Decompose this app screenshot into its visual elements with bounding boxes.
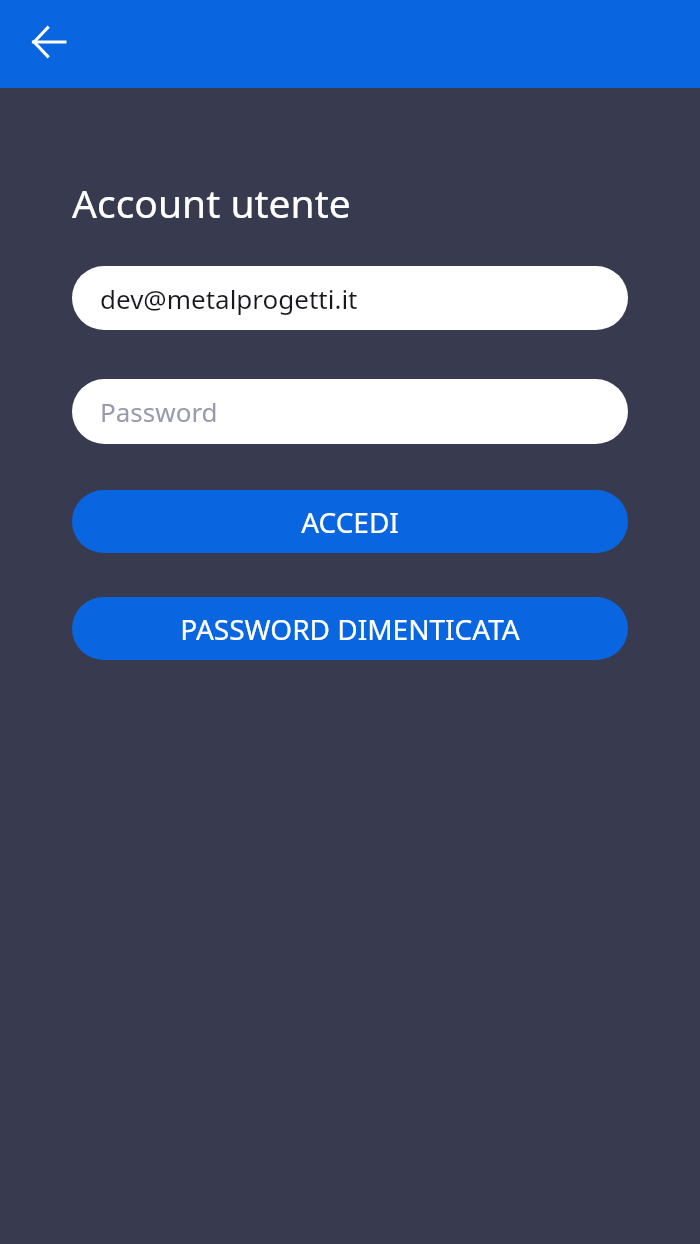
button[interactable]: dev@metalprogetti.it [72,266,628,330]
staticText: ACCEDI [301,503,399,541]
button[interactable]: Back [21,14,77,70]
staticText: Account utente [72,176,351,229]
button[interactable]: ACCEDI [72,490,628,553]
staticText: Password [100,394,218,429]
staticText: PASSWORD DIMENTICATA [180,610,520,648]
button[interactable]: Password [72,379,628,444]
staticText: dev@metalprogetti.it [100,281,358,316]
button[interactable]: PASSWORD DIMENTICATA [72,597,628,660]
